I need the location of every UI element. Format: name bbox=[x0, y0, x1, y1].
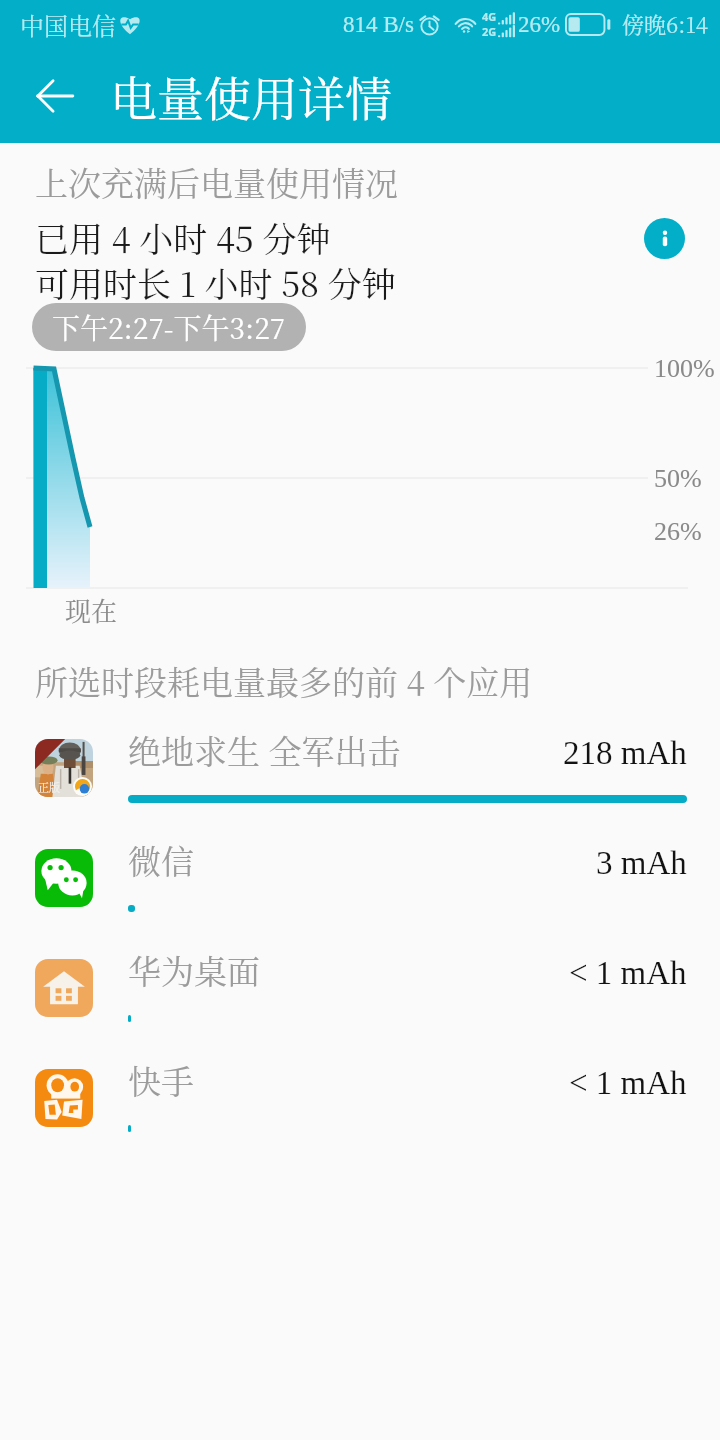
staticText: 26% bbox=[518, 12, 561, 37]
button[interactable]: 正版 bbox=[0, 716, 720, 826]
staticText: 绝地求生 全军出击 bbox=[128, 726, 401, 773]
staticText: 所选时段耗电量最多的前 4 个应用 bbox=[35, 657, 533, 704]
staticText: 218 mAh bbox=[563, 735, 687, 772]
staticText: 现在 bbox=[65, 591, 118, 628]
staticText: 50% bbox=[654, 464, 702, 493]
staticText: 814 B/s bbox=[343, 12, 414, 37]
staticText: 电量使用详情 bbox=[110, 62, 392, 130]
staticText: 4G bbox=[482, 9, 497, 24]
staticText: 傍晚6:14 bbox=[622, 8, 709, 40]
button[interactable]: Info bbox=[644, 218, 685, 259]
staticText: 中国电信 bbox=[20, 7, 116, 41]
staticText: 100% bbox=[654, 354, 715, 383]
button[interactable]: 华为桌面 bbox=[0, 936, 720, 1046]
staticText: 华为桌面 bbox=[128, 946, 260, 993]
button[interactable]: 微信 bbox=[0, 826, 720, 936]
staticText: 已用 4 小时 45 分钟 bbox=[35, 213, 331, 262]
button[interactable]: 快手 bbox=[0, 1046, 720, 1156]
staticText: 2G bbox=[482, 24, 497, 39]
staticText: < 1 mAh bbox=[569, 955, 687, 992]
staticText: < 1 mAh bbox=[569, 1065, 687, 1102]
staticText: 3 mAh bbox=[596, 845, 687, 882]
staticText: 26% bbox=[654, 517, 702, 546]
button[interactable]: 下午2:27-下午3:27 bbox=[32, 303, 306, 351]
staticText: 可用时长 1 小时 58 分钟 bbox=[35, 258, 396, 307]
staticText: 微信 bbox=[128, 836, 194, 883]
staticText: 下午2:27-下午3:27 bbox=[52, 307, 286, 347]
button[interactable]: Back bbox=[0, 48, 110, 143]
staticText: 快手 bbox=[128, 1056, 194, 1103]
staticText: 正版 bbox=[38, 779, 60, 795]
staticText: 上次充满后电量使用情况 bbox=[35, 158, 398, 205]
